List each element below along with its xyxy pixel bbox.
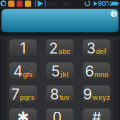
staticText: 9: [83, 85, 92, 103]
staticText: mno: [94, 70, 108, 79]
staticText: ✱: [17, 109, 29, 120]
button[interactable]: 1: [9, 40, 37, 56]
button[interactable]: 5: [46, 63, 73, 79]
button[interactable]: 3: [83, 40, 110, 56]
button[interactable]: 2: [46, 40, 73, 56]
button[interactable]: 0: [46, 109, 73, 120]
staticText: 90%: [98, 0, 113, 8]
button[interactable]: 8: [46, 86, 73, 102]
staticText: abc: [58, 47, 70, 56]
staticText: AT&T 3G: [46, 0, 69, 7]
staticText: #: [92, 108, 101, 120]
staticText: 0: [53, 108, 62, 120]
staticText: ghi: [23, 70, 33, 79]
button[interactable]: 4: [9, 63, 37, 79]
staticText: 2: [49, 39, 58, 57]
staticText: wxyz: [92, 93, 110, 102]
staticText: jkl: [60, 70, 68, 79]
staticText: 8: [50, 85, 59, 103]
staticText: def: [96, 47, 107, 56]
staticText: 1: [20, 39, 26, 57]
staticText: i: [113, 11, 114, 17]
staticText: +: [62, 116, 67, 120]
staticText: 4: [13, 62, 22, 80]
staticText: 6: [85, 62, 94, 80]
button[interactable]: #: [83, 109, 110, 120]
button[interactable]: Add contact: [111, 11, 117, 17]
staticText: 5: [51, 62, 60, 80]
staticText: pqrs: [20, 93, 35, 102]
staticText: (▶): [34, 0, 47, 8]
staticText: 3: [86, 39, 95, 57]
button[interactable]: 7: [9, 86, 37, 102]
staticText: tuv: [59, 93, 69, 102]
staticText: 7: [11, 85, 19, 103]
button[interactable]: 6: [83, 63, 110, 79]
button[interactable]: 9: [83, 86, 110, 102]
button[interactable]: ✱: [9, 109, 37, 120]
